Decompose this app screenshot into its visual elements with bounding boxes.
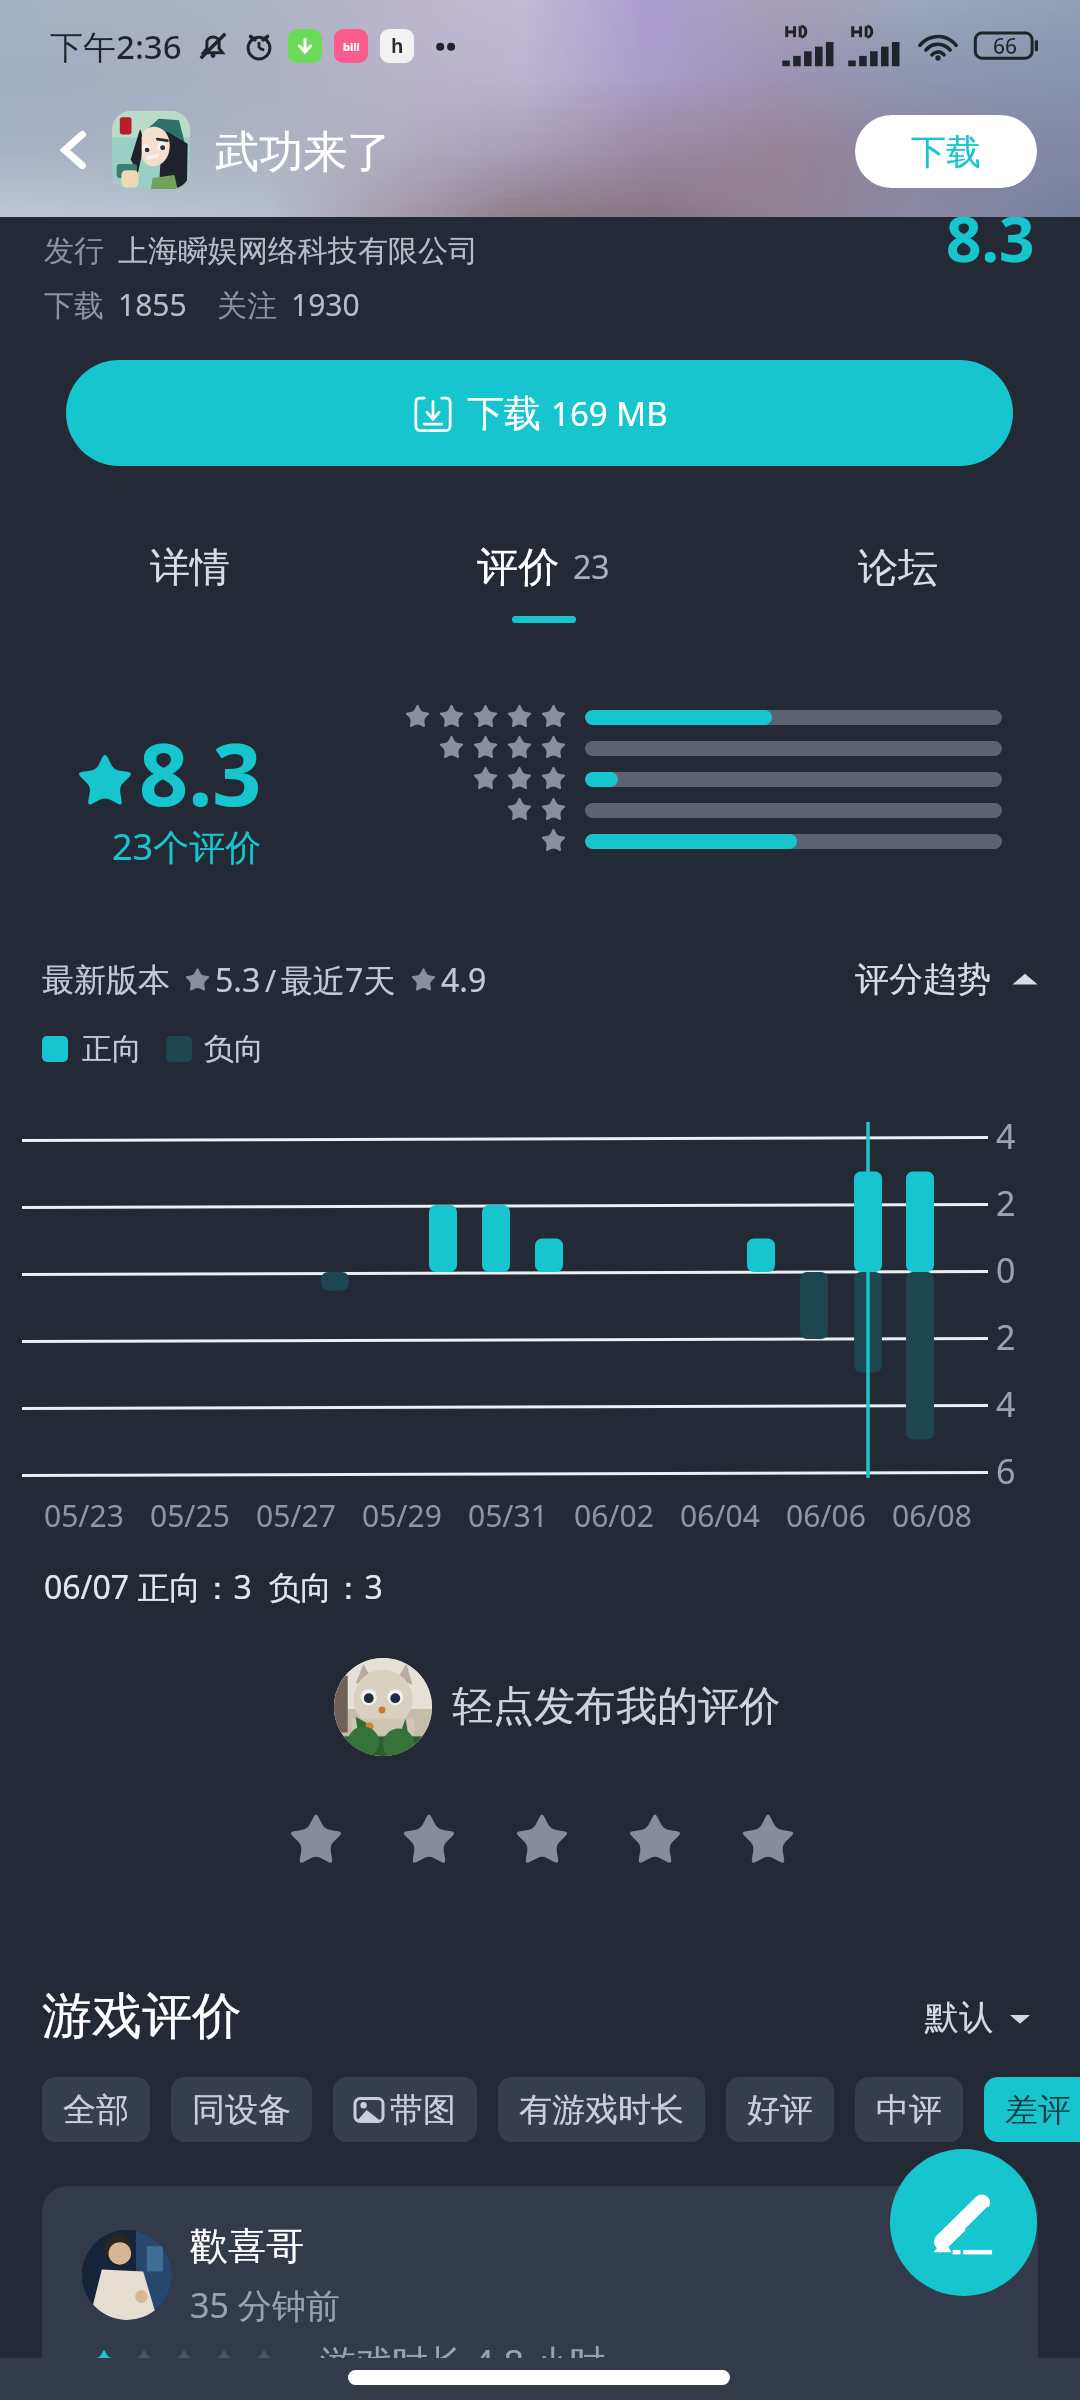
button[interactable]: Rate 3 stars — [513, 1812, 571, 1870]
staticText: 下载 — [911, 130, 981, 174]
staticText: 评分趋势 — [855, 958, 991, 1001]
button[interactable]: 评分趋势 — [855, 958, 1039, 1001]
button[interactable]: 默认 — [925, 1996, 1031, 2039]
staticText: 差评 — [1005, 2089, 1071, 2131]
staticText: 8.3 — [946, 196, 1035, 280]
staticText: 轻点发布我的评价 — [452, 1681, 780, 1733]
staticText: 1855 — [118, 284, 187, 325]
staticText: 6 — [996, 1448, 1016, 1494]
button[interactable]: 论坛 — [748, 542, 1048, 657]
staticText: 06/02 — [574, 1495, 654, 1536]
staticText: 下午2:36 — [50, 24, 182, 69]
staticText: 05/23 — [44, 1495, 124, 1536]
button[interactable]: Write review — [890, 2149, 1037, 2296]
staticText: 论坛 — [858, 542, 938, 592]
staticText: 06/08 — [892, 1495, 972, 1536]
staticText: 最近7天 — [281, 958, 396, 1002]
button[interactable]: 详情 — [40, 542, 340, 657]
button[interactable]: 全部 — [42, 2077, 150, 2142]
button[interactable]: Rate 1 stars — [287, 1812, 345, 1870]
button[interactable]: Rate 4 stars — [626, 1812, 684, 1870]
staticText: 正向 — [82, 1030, 142, 1068]
staticText: 发行 — [44, 232, 104, 270]
staticText: 武功来了 — [215, 125, 391, 180]
staticText: 4 — [996, 1381, 1016, 1427]
staticText: 66 — [993, 32, 1018, 61]
staticText: 2 — [996, 1180, 1016, 1226]
staticText: 1930 — [291, 284, 360, 325]
staticText: 下载 — [44, 287, 104, 325]
staticText: 评价 — [477, 542, 559, 594]
staticText: 负向 — [204, 1030, 264, 1068]
staticText: 好评 — [747, 2089, 813, 2131]
staticText: 游戏评价 — [42, 1985, 242, 2048]
staticText: h — [391, 33, 404, 59]
button[interactable]: 下载 — [855, 115, 1037, 188]
button[interactable]: 轻点发布我的评价 — [334, 1658, 780, 1756]
staticText: 05/31 — [468, 1495, 548, 1536]
button[interactable]: Rate 2 stars — [400, 1812, 458, 1870]
staticText: 05/25 — [150, 1495, 230, 1536]
staticText: 06/06 — [786, 1495, 866, 1536]
staticText: 05/27 — [256, 1495, 336, 1536]
staticText: 06/04 — [680, 1495, 760, 1536]
staticText: 2 — [996, 1314, 1016, 1360]
staticText: 169 MB — [551, 391, 668, 436]
staticText: 23个评价 — [112, 822, 262, 871]
staticText: 下载 — [467, 390, 541, 437]
staticText: bili — [343, 39, 360, 54]
button[interactable]: 差评 — [984, 2077, 1080, 2142]
button[interactable]: 同设备 — [171, 2077, 312, 2142]
staticText: 歡喜哥 — [190, 2222, 304, 2270]
staticText: 35 分钟前 — [190, 2282, 340, 2328]
staticText: 同设备 — [192, 2089, 291, 2131]
button[interactable]: 歡喜哥 — [42, 2186, 1038, 2400]
button[interactable]: 评价 — [393, 542, 693, 657]
staticText: 关注 — [217, 287, 277, 325]
staticText: 中评 — [876, 2089, 942, 2131]
button[interactable]: Back — [46, 122, 102, 178]
button[interactable]: 好评 — [726, 2077, 834, 2142]
staticText: 4 — [996, 1113, 1016, 1159]
button[interactable]: 中评 — [855, 2077, 963, 2142]
staticText: 0 — [996, 1247, 1016, 1293]
staticText: 上海瞬娱网络科技有限公司 — [118, 232, 478, 270]
staticText: 06/07 正向：3 负向：3 — [44, 1565, 383, 1609]
staticText: 5.3 — [215, 958, 261, 1002]
staticText: 默认 — [925, 1996, 993, 2039]
staticText: 有游戏时长 — [519, 2089, 684, 2131]
button[interactable]: 有游戏时长 — [498, 2077, 705, 2142]
staticText: 游戏时长 4.8 小时 — [320, 2338, 606, 2387]
staticText: 8.3 — [139, 714, 262, 831]
staticText: 详情 — [150, 542, 230, 592]
staticText: 4.9 — [441, 958, 487, 1002]
staticText: 23 — [573, 545, 610, 589]
staticText: 最新版本 — [42, 960, 170, 1000]
button[interactable]: 下载 — [66, 360, 1013, 466]
button[interactable]: Rate 5 stars — [739, 1812, 797, 1870]
button[interactable]: 带图 — [333, 2077, 477, 2142]
staticText: / — [265, 960, 277, 1001]
staticText: 带图 — [390, 2089, 456, 2131]
staticText: 全部 — [63, 2089, 129, 2131]
staticText: 05/29 — [362, 1495, 442, 1536]
